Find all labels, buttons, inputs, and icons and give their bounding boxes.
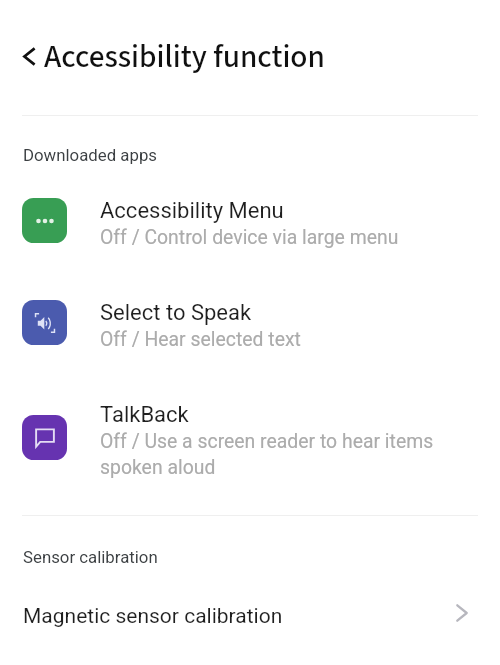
staticText: Downloaded apps xyxy=(23,145,157,165)
staticText: Off / Use a screen reader to hear items … xyxy=(100,427,478,479)
button[interactable]: Select to Speak xyxy=(0,271,500,373)
other: Select to Speak xyxy=(22,300,67,345)
staticText: Off / Control device via large menu xyxy=(100,223,399,249)
button[interactable]: Magnetic sensor calibration xyxy=(0,585,500,645)
button[interactable]: Navigate up xyxy=(9,36,49,76)
other: Accessibility Menu xyxy=(22,198,67,243)
staticText: Accessibility Menu xyxy=(100,197,284,223)
button[interactable]: TalkBack xyxy=(0,373,500,501)
staticText: TalkBack xyxy=(100,401,189,427)
staticText: Off / Hear selected text xyxy=(100,325,301,351)
other: TalkBack xyxy=(22,415,67,460)
staticText: Sensor calibration xyxy=(23,547,158,567)
button[interactable]: Accessibility Menu xyxy=(0,169,500,271)
other: Open xyxy=(456,604,468,622)
staticText: Select to Speak xyxy=(100,299,252,325)
staticText: Magnetic sensor calibration xyxy=(23,602,283,628)
staticText: Accessibility function xyxy=(44,41,325,77)
